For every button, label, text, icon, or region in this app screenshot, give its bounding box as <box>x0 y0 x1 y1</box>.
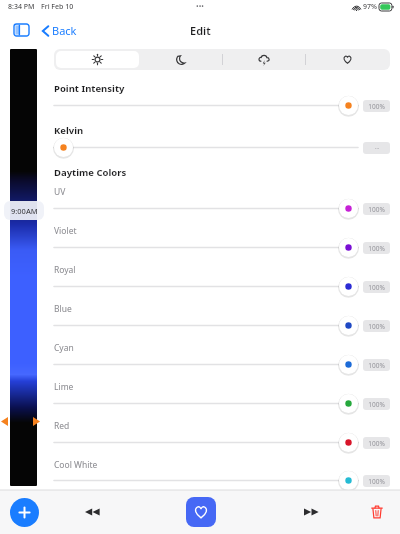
button[interactable]: 100% <box>54 95 390 116</box>
button[interactable]: 100% <box>54 198 390 219</box>
staticText: 100% <box>368 283 385 292</box>
staticText: Blue <box>54 303 72 315</box>
staticText: Violet <box>54 225 77 237</box>
staticText: 100% <box>368 322 385 331</box>
button[interactable]: Fast forward <box>296 497 326 527</box>
staticText: 100% <box>368 244 385 253</box>
button[interactable]: Storm <box>223 51 305 68</box>
staticText: Lime <box>54 381 74 393</box>
staticText: 100% <box>368 361 385 370</box>
button[interactable]: Favorite <box>186 497 216 527</box>
staticText: 8:34 PM <box>8 2 35 12</box>
staticText: Daytime Colors <box>54 166 127 179</box>
button[interactable]: 100% <box>54 276 390 297</box>
staticText: Royal <box>54 264 76 276</box>
button[interactable]: 100% <box>54 315 390 336</box>
staticText: 97% <box>363 2 377 12</box>
button[interactable]: 100% <box>54 432 390 453</box>
button[interactable]: Add <box>10 498 39 527</box>
staticText: Fri Feb 10 <box>41 2 74 12</box>
button[interactable]: Toggle sidebar <box>10 19 32 41</box>
staticText: 100% <box>368 102 385 111</box>
staticText: Edit <box>190 23 211 38</box>
button[interactable]: Night <box>140 51 222 68</box>
staticText: Cyan <box>54 342 74 354</box>
button[interactable]: Daytime <box>56 51 139 68</box>
button[interactable]: 100% <box>54 393 390 414</box>
button[interactable]: Back <box>42 23 77 38</box>
staticText: 9:00AM <box>11 206 38 216</box>
button[interactable]: 100% <box>54 471 390 490</box>
staticText: Point Intensity <box>54 82 125 95</box>
button[interactable]: Favorites <box>306 51 388 68</box>
staticText: 100% <box>368 205 385 214</box>
button[interactable]: 100% <box>54 237 390 258</box>
staticText: Cool White <box>54 459 98 471</box>
button[interactable]: ··· <box>54 137 390 158</box>
staticText: ••• <box>196 2 204 12</box>
staticText: UV <box>54 186 66 198</box>
staticText: ··· <box>374 144 380 153</box>
staticText: 100% <box>368 477 385 486</box>
staticText: Red <box>54 420 70 432</box>
button[interactable]: 100% <box>54 354 390 375</box>
button[interactable]: Delete <box>364 499 390 525</box>
button[interactable]: Rewind <box>77 497 107 527</box>
staticText: Kelvin <box>54 124 84 137</box>
staticText: Back <box>52 23 77 38</box>
button[interactable]: Timeline <box>10 49 37 486</box>
staticText: 100% <box>368 400 385 409</box>
staticText: 100% <box>368 439 385 448</box>
